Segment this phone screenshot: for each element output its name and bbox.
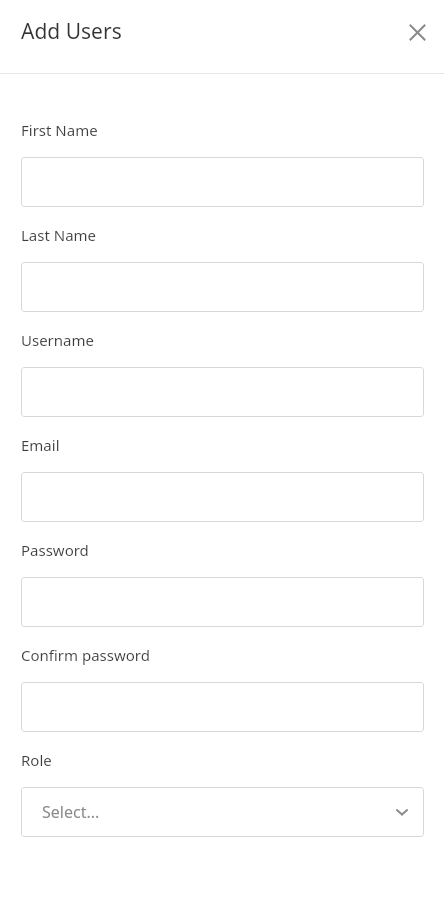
button[interactable] (21, 472, 424, 522)
button[interactable] (21, 157, 424, 207)
staticText: Username (21, 330, 94, 350)
staticText: Add Users (21, 17, 122, 46)
staticText: First Name (21, 120, 98, 140)
staticText: Role (21, 750, 52, 770)
staticText: Email (21, 435, 60, 455)
button[interactable] (21, 682, 424, 732)
button[interactable] (21, 262, 424, 312)
button[interactable]: Close (399, 14, 435, 50)
staticText: Password (21, 540, 89, 560)
staticText: Confirm password (21, 645, 150, 665)
button[interactable] (21, 577, 424, 627)
button[interactable] (21, 367, 424, 417)
button[interactable]: Select... (21, 787, 424, 837)
staticText: Last Name (21, 225, 97, 245)
staticText: Select... (42, 801, 394, 823)
